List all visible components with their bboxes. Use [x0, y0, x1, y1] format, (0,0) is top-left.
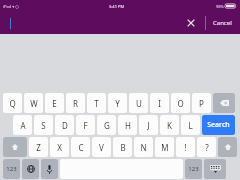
staticText: 123: [188, 165, 199, 173]
staticText: I: [158, 98, 161, 109]
staticText: U: [136, 98, 142, 109]
staticText: Q: [9, 98, 16, 109]
button[interactable]: H: [118, 115, 137, 135]
staticText: A: [20, 120, 26, 131]
staticText: Y: [115, 98, 120, 109]
staticText: J: [147, 120, 150, 131]
button[interactable]: C: [71, 137, 90, 157]
button[interactable]: Dictate: [41, 159, 58, 179]
staticText: F: [83, 120, 88, 131]
staticText: !: [184, 142, 187, 153]
button[interactable]: Search: [202, 115, 235, 135]
staticText: P: [199, 98, 204, 109]
staticText: H: [125, 120, 131, 131]
button[interactable]: O: [171, 93, 190, 113]
button[interactable]: Q: [3, 93, 22, 113]
staticText: 123: [6, 165, 17, 173]
staticText: E: [52, 98, 57, 109]
button[interactable]: K: [160, 115, 179, 135]
staticText: 3:41 PM: [109, 4, 125, 9]
button[interactable]: Clear search: [183, 15, 199, 31]
button[interactable]: Change keyboard: [22, 159, 39, 179]
button[interactable]: D: [55, 115, 74, 135]
button[interactable]: W: [24, 93, 43, 113]
button[interactable]: A: [13, 115, 32, 135]
staticText: B: [120, 142, 126, 153]
button[interactable]: J: [139, 115, 158, 135]
staticText: L: [188, 120, 193, 131]
button[interactable]: Y: [108, 93, 127, 113]
staticText: V: [99, 142, 104, 153]
staticText: T: [94, 98, 99, 109]
staticText: R: [73, 98, 78, 109]
staticText: C: [78, 142, 84, 153]
button[interactable]: F: [76, 115, 95, 135]
button[interactable]: R: [66, 93, 85, 113]
staticText: G: [104, 120, 110, 131]
button[interactable]: P: [192, 93, 211, 113]
staticText: 98%: [216, 4, 224, 9]
button[interactable]: X: [50, 137, 69, 157]
button[interactable]: 123: [185, 159, 202, 179]
staticText: N: [140, 142, 147, 153]
staticText: Cancel: [213, 19, 232, 27]
button[interactable]: V: [92, 137, 111, 157]
staticText: K: [167, 120, 172, 131]
button[interactable]: N: [134, 137, 153, 157]
button[interactable]: Cancel: [213, 19, 232, 27]
staticText: iPad ▾ ○: [3, 4, 19, 9]
button[interactable]: U: [129, 93, 148, 113]
button[interactable]: Hide keyboard: [204, 159, 226, 179]
staticText: ?: [205, 142, 209, 153]
staticText: X: [57, 142, 62, 153]
button[interactable]: G: [97, 115, 116, 135]
button[interactable]: B: [113, 137, 132, 157]
button[interactable]: ?: [197, 137, 216, 157]
staticText: M: [161, 142, 169, 153]
button[interactable]: S: [34, 115, 53, 135]
button[interactable]: L: [181, 115, 200, 135]
staticText: Search: [207, 120, 230, 130]
staticText: W: [30, 98, 38, 109]
staticText: Z: [36, 142, 41, 153]
button[interactable]: Backspace: [213, 93, 235, 113]
button[interactable]: Shift: [3, 137, 27, 157]
staticText: S: [41, 120, 46, 131]
button[interactable]: M: [155, 137, 174, 157]
staticText: O: [177, 98, 184, 109]
button[interactable]: T: [87, 93, 106, 113]
button[interactable]: 123: [3, 159, 20, 179]
button[interactable]: !: [176, 137, 195, 157]
button[interactable]: I: [150, 93, 169, 113]
staticText: D: [62, 120, 68, 131]
button[interactable]: Z: [29, 137, 48, 157]
button[interactable]: Shift: [218, 137, 237, 157]
button[interactable]: E: [45, 93, 64, 113]
